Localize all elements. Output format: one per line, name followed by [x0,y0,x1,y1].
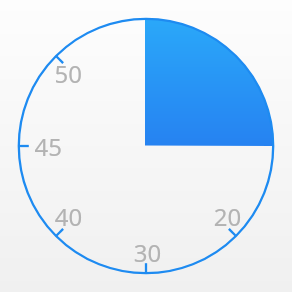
button[interactable]: Timer dial, 45 minutes [0,0,292,292]
